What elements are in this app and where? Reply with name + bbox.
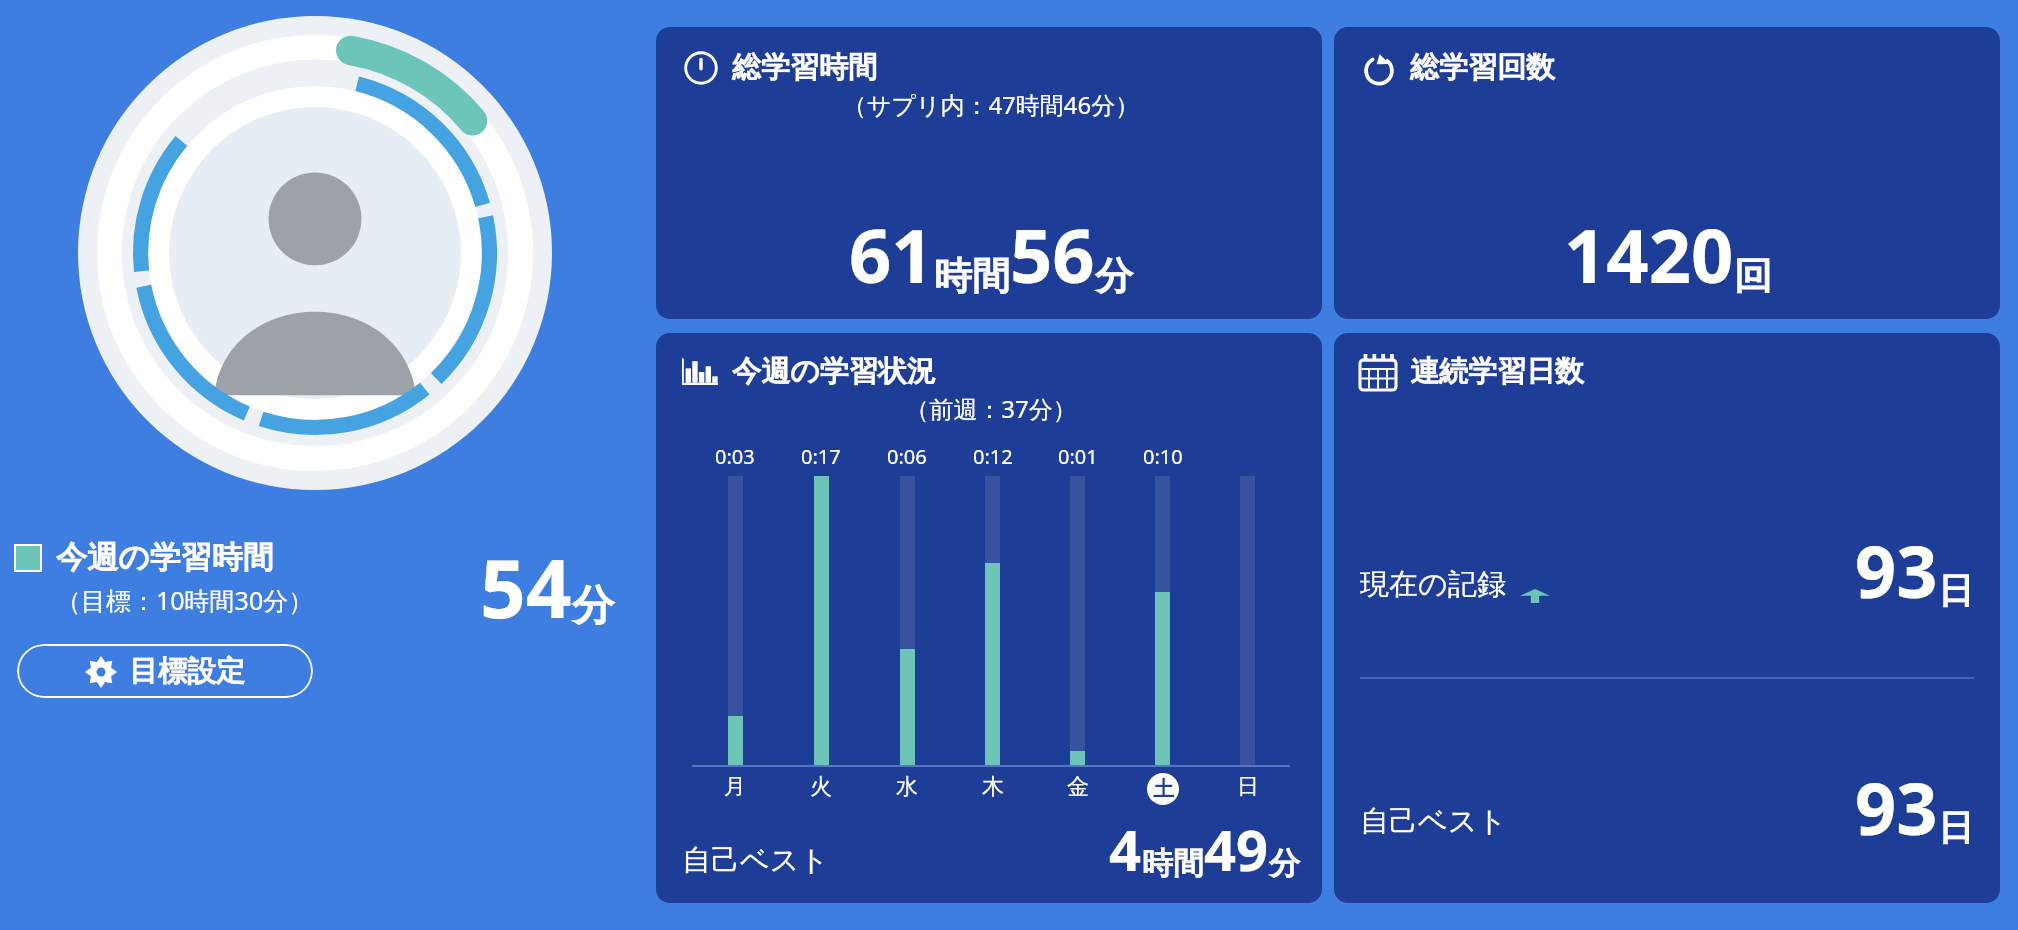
staticText: 自己ベスト — [682, 842, 830, 879]
staticText: 0:06 — [887, 443, 927, 470]
button[interactable]: Clock — [656, 27, 1322, 319]
staticText: 時間 — [934, 252, 1010, 300]
staticText: 61 — [849, 204, 934, 305]
staticText: 目標設定 — [129, 653, 245, 690]
staticText: 現在の記録 — [1360, 566, 1506, 603]
staticText: 0:17 — [801, 443, 841, 470]
staticText: 54 — [480, 532, 572, 641]
staticText: 自己ベスト — [1360, 803, 1508, 840]
staticText: 分 — [1095, 252, 1133, 300]
other: Clock — [684, 51, 718, 85]
staticText: 回 — [1734, 252, 1772, 300]
staticText: 日 — [1938, 568, 1974, 613]
staticText: 金 — [1067, 773, 1089, 801]
staticText: 日 — [1237, 773, 1259, 801]
staticText: 総学習時間 — [732, 49, 877, 86]
staticText: 水 — [896, 773, 918, 801]
staticText: 土 — [1153, 776, 1174, 802]
button[interactable]: Chart — [656, 333, 1322, 903]
staticText: 0:03 — [715, 443, 755, 470]
staticText: 総学習回数 — [1410, 49, 1555, 86]
staticText: 56 — [1010, 204, 1095, 305]
staticText: 連続学習日数 — [1410, 353, 1584, 390]
staticText: 今週の学習状況 — [732, 353, 936, 390]
other: Repeat — [1362, 51, 1396, 85]
staticText: 火 — [810, 773, 832, 801]
staticText: 日 — [1938, 805, 1974, 850]
staticText: 49 — [1204, 811, 1269, 887]
button[interactable]: 目標設定 — [17, 644, 313, 698]
staticText: 0:10 — [1143, 443, 1183, 470]
staticText: 1420 — [1564, 204, 1734, 305]
staticText: 分 — [1269, 844, 1300, 883]
button[interactable]: Repeat — [1334, 27, 2000, 319]
staticText: 時間 — [1142, 844, 1204, 883]
staticText: 木 — [982, 773, 1004, 801]
staticText: 分 — [572, 580, 614, 633]
other: Chart — [682, 354, 718, 390]
staticText: 0:12 — [973, 443, 1013, 470]
staticText: 月 — [724, 773, 746, 801]
staticText: 93 — [1855, 521, 1938, 619]
button[interactable]: Calendar — [1334, 333, 2000, 903]
staticText: 4 — [1109, 811, 1142, 887]
other: Calendar — [1360, 354, 1396, 390]
staticText: 0:01 — [1058, 443, 1098, 470]
staticText: 93 — [1855, 758, 1938, 856]
staticText: （サプリ内：47時間46分） — [684, 88, 1298, 121]
staticText: （前週：37分） — [682, 392, 1300, 425]
staticText: 今週の学習時間 — [56, 538, 274, 577]
staticText: （目標：10時間30分） — [56, 583, 314, 617]
